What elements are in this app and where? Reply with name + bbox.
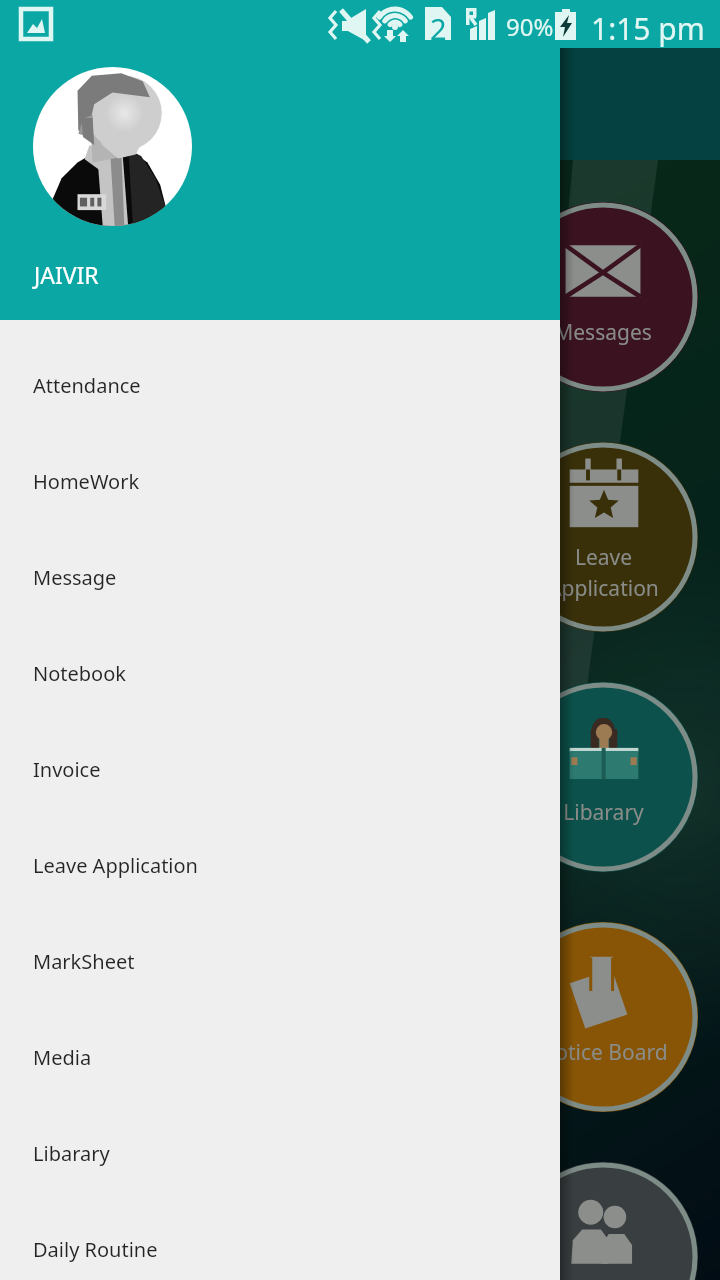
button[interactable]: My Profile <box>508 1162 698 1280</box>
staticText: Notebook <box>33 660 126 687</box>
staticText: 1:15 pm <box>591 8 705 49</box>
button[interactable]: Leave Application <box>508 442 698 632</box>
button[interactable]: Profile photo <box>33 67 192 226</box>
staticText: My Profile <box>554 1278 653 1280</box>
button[interactable]: Libarary <box>508 682 698 872</box>
staticText: Attendance <box>33 372 141 399</box>
button[interactable]: Daily Routine <box>0 1201 560 1280</box>
button[interactable]: Notebook <box>0 625 560 721</box>
staticText: Leave Application <box>33 852 198 879</box>
staticText: Attendance <box>66 318 180 347</box>
button[interactable]: Messages <box>508 202 698 392</box>
staticText: 90% <box>506 10 554 43</box>
staticText: Student <box>118 81 244 127</box>
staticText: MarkSheet <box>33 948 135 975</box>
staticText: Notebook <box>74 558 172 587</box>
staticText: Libarary <box>563 798 644 827</box>
button[interactable]: Screenshot captured <box>14 0 58 44</box>
button[interactable]: MarkSheet <box>28 682 218 872</box>
button[interactable]: Notebook <box>28 442 218 632</box>
staticText: Leave Application <box>548 543 659 602</box>
button[interactable]: MarkSheet <box>0 913 560 1009</box>
staticText: Invoice <box>33 756 101 783</box>
button[interactable]: Message <box>0 529 560 625</box>
button[interactable]: Daily Routine <box>28 922 218 1112</box>
button[interactable]: Attendance <box>28 202 218 392</box>
button[interactable]: Notice Board <box>508 922 698 1112</box>
staticText: Daily Routine <box>33 1236 158 1263</box>
staticText: Notice Board <box>539 1038 668 1067</box>
staticText: HomeWork <box>33 468 140 495</box>
staticText: Message <box>33 564 117 591</box>
button[interactable]: Libarary <box>0 1105 560 1201</box>
staticText: JAIVIR <box>34 259 99 290</box>
button[interactable]: Invoice <box>0 721 560 817</box>
button[interactable]: Media <box>0 1009 560 1105</box>
button[interactable]: Open navigation menu <box>26 72 90 136</box>
button[interactable]: HomeWork <box>0 433 560 529</box>
staticText: Libarary <box>33 1140 110 1167</box>
staticText: Media <box>33 1044 92 1071</box>
button[interactable]: Attendance <box>0 337 560 433</box>
button[interactable]: Leave Application <box>0 817 560 913</box>
staticText: Daily Routine <box>58 1038 189 1067</box>
staticText: Messages <box>554 318 652 347</box>
staticText: Home Work <box>305 318 422 347</box>
button[interactable]: Gallery <box>28 1162 218 1280</box>
staticText: 2 <box>430 9 447 48</box>
button[interactable]: Home Work <box>268 202 458 392</box>
